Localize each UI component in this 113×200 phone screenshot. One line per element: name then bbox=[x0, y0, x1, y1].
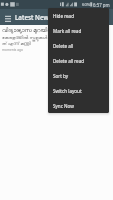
staticText: 6:57 pm bbox=[93, 2, 110, 8]
button[interactable]: Mark all read bbox=[48, 23, 109, 38]
staticText: Delete all read bbox=[53, 58, 85, 64]
staticText: വിദ്യാഭ്യാസ മുറയിൽ മാറ്റം bbox=[2, 26, 68, 34]
staticText: Latest News bbox=[15, 13, 52, 22]
button[interactable]: Delete all bbox=[48, 38, 109, 53]
staticText: ത് എന്ന് മന്ത്രി bbox=[2, 40, 31, 46]
button[interactable]: വിദ്യാഭ്യാസ മുറയിൽ മാറ്റം bbox=[0, 25, 113, 55]
staticText: Switch layout bbox=[53, 88, 82, 94]
button[interactable]: Sort by bbox=[48, 68, 109, 83]
button[interactable]: Sync Now bbox=[48, 98, 109, 113]
staticText: Delete all bbox=[53, 43, 74, 49]
button[interactable]: Open navigation drawer bbox=[0, 10, 15, 25]
button[interactable]: Hide read bbox=[48, 8, 109, 23]
staticText: 60% bbox=[82, 2, 91, 8]
staticText: Sync Now bbox=[53, 103, 74, 109]
staticText: Hide read bbox=[53, 13, 74, 19]
staticText: കേരളത്തിൽ സ്കൂളുകൾ തുറക്കുന്ന bbox=[2, 34, 67, 40]
staticText: Mark all read bbox=[53, 28, 82, 34]
staticText: Sort by bbox=[53, 73, 69, 79]
button[interactable]: Switch layout bbox=[48, 83, 109, 98]
button[interactable]: Delete all read bbox=[48, 53, 109, 68]
staticText: moments ago bbox=[2, 48, 23, 52]
